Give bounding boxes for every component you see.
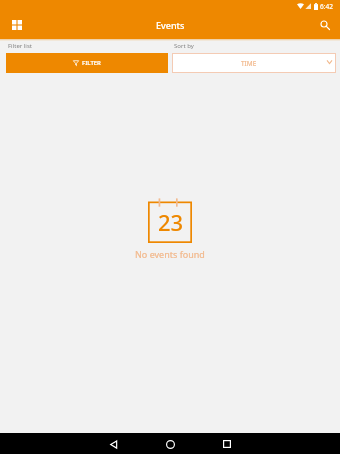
staticText: FILTER	[82, 59, 101, 67]
button[interactable]: FILTER	[6, 53, 168, 73]
staticText: TIME	[241, 59, 257, 68]
staticText: 23	[158, 207, 184, 237]
staticText: Filter list	[8, 42, 32, 50]
button[interactable]: Home	[161, 434, 179, 454]
staticText: Sort by	[174, 42, 194, 50]
button[interactable]: Recent apps	[218, 434, 236, 454]
button[interactable]: TIME	[172, 53, 336, 73]
staticText: Events	[156, 19, 185, 31]
staticText: 6:42	[320, 2, 333, 11]
button[interactable]: Search	[314, 14, 336, 36]
staticText: No events found	[135, 248, 205, 260]
button[interactable]: Back	[104, 434, 122, 454]
button[interactable]: Open navigation menu	[6, 14, 28, 36]
